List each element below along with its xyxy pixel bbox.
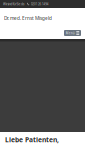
button[interactable]: Wir sind für Sie da bbox=[3, 2, 25, 6]
button[interactable]: Call 0201 26 1494 bbox=[27, 1, 49, 6]
staticText: Liebe Patienten, bbox=[5, 135, 59, 144]
button[interactable]: Dr. med. Ernst Misgeld bbox=[0, 8, 52, 21]
staticText: Wir sind für Sie da bbox=[3, 2, 25, 6]
staticText: Menü bbox=[66, 31, 75, 35]
staticText: Dr. med. Ernst Misgeld bbox=[4, 15, 52, 21]
button[interactable]: Menü bbox=[64, 30, 81, 36]
staticText: 0201 26 1494 bbox=[31, 2, 49, 6]
